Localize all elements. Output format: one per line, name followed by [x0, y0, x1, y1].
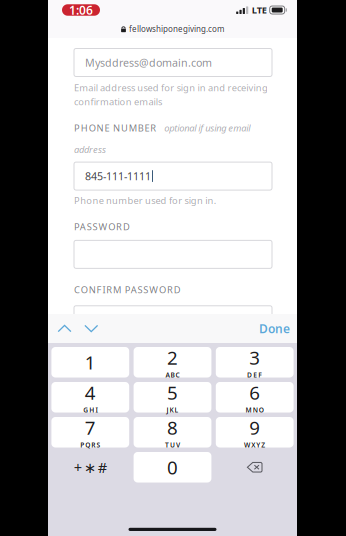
staticText: 2 — [167, 345, 178, 370]
staticText: PQRS — [80, 440, 100, 449]
staticText: 1:06 — [69, 2, 93, 18]
staticText: + ∗ # — [74, 457, 107, 477]
staticText: MNO — [246, 405, 264, 414]
staticText: Done — [259, 320, 290, 336]
staticText: confirmation emails — [74, 95, 162, 108]
button[interactable]: Delete — [216, 452, 294, 482]
staticText: CONFIRM PASSWORD — [74, 283, 181, 296]
staticText: Phone number used for sign in. — [74, 194, 217, 206]
button[interactable]: 5 — [134, 382, 211, 412]
staticText: GHI — [83, 405, 97, 414]
button[interactable]: 2 — [134, 347, 211, 377]
staticText: PHONE NUMBER — [74, 122, 156, 134]
staticText: 1 — [85, 350, 96, 375]
button[interactable]: Done — [259, 314, 297, 343]
staticText: LTE — [252, 4, 267, 16]
button[interactable]: 6 — [216, 382, 294, 412]
staticText: 8 — [167, 415, 178, 440]
staticText: WXYZ — [244, 440, 265, 449]
staticText: optional if using email — [164, 122, 250, 134]
staticText: 5 — [167, 380, 178, 405]
button[interactable]: 4 — [51, 382, 129, 412]
staticText: 0 — [167, 455, 178, 480]
button[interactable]: Next field — [78, 314, 105, 343]
button[interactable]: Previous field — [51, 314, 78, 343]
button[interactable] — [74, 240, 272, 268]
button[interactable]: Symbols — [51, 452, 129, 482]
staticText: 4 — [85, 380, 96, 405]
staticText: 845-111-1111 — [85, 169, 151, 183]
staticText: PASSWORD — [74, 220, 130, 233]
staticText: Email address used for sign in and recei… — [74, 81, 268, 94]
button[interactable]: fellowshiponegiving.com — [48, 20, 297, 38]
button[interactable]: 7 — [51, 417, 129, 447]
staticText: 6 — [249, 380, 260, 405]
staticText: address — [74, 143, 106, 156]
staticText: 3 — [249, 345, 260, 370]
button[interactable]: 3 — [216, 347, 294, 377]
staticText: fellowshiponegiving.com — [129, 24, 224, 34]
button[interactable]: 9 — [216, 417, 294, 447]
button[interactable]: 845-111-1111 — [74, 162, 272, 190]
staticText: ABC — [165, 370, 180, 379]
staticText: 7 — [85, 415, 96, 440]
staticText: TUV — [165, 440, 180, 449]
button[interactable]: 0 — [134, 452, 211, 482]
staticText: DEF — [247, 370, 262, 379]
staticText: 9 — [249, 415, 260, 440]
button[interactable]: 8 — [134, 417, 211, 447]
button[interactable] — [74, 306, 272, 334]
button[interactable]: 1 — [51, 347, 129, 377]
staticText: Mysddress@domain.com — [85, 55, 212, 70]
button[interactable]: Mysddress@domain.com — [74, 48, 272, 76]
staticText: JKL — [166, 405, 179, 414]
